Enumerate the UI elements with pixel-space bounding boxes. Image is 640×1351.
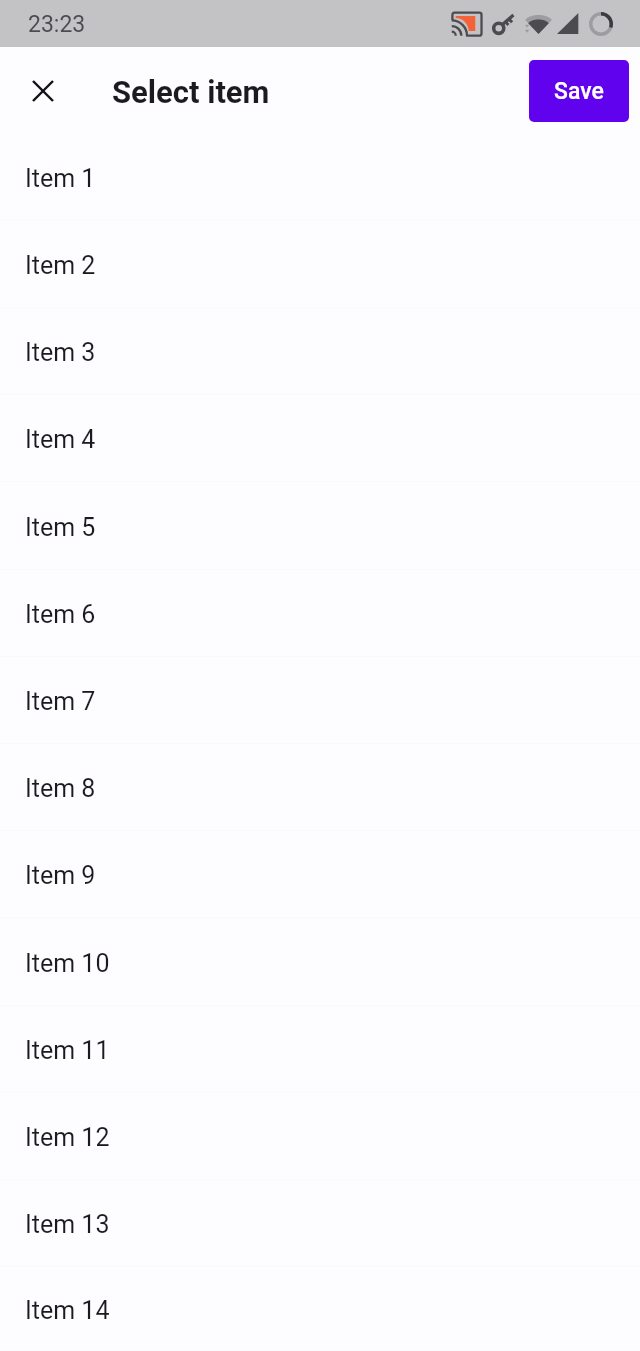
staticText: Item 8 <box>25 774 96 803</box>
button[interactable]: Item 11 <box>0 1006 640 1093</box>
staticText: Item 1 <box>25 164 96 193</box>
staticText: Save <box>554 78 604 105</box>
staticText: Item 12 <box>25 1123 110 1152</box>
button[interactable]: Save <box>529 60 629 122</box>
staticText: 23:23 <box>28 11 86 38</box>
staticText: Item 11 <box>25 1036 110 1065</box>
button[interactable]: Item 10 <box>0 918 640 1006</box>
button[interactable]: Item 2 <box>0 221 640 308</box>
button[interactable]: Close <box>19 67 67 115</box>
button[interactable]: Item 1 <box>0 134 640 221</box>
staticText: Item 10 <box>25 949 110 978</box>
button[interactable]: Item 7 <box>0 657 640 744</box>
button[interactable]: Item 5 <box>0 482 640 570</box>
button[interactable]: Item 3 <box>0 308 640 395</box>
button[interactable]: Item 14 <box>0 1267 640 1351</box>
button[interactable]: Item 12 <box>0 1093 640 1180</box>
staticText: Item 3 <box>25 338 96 367</box>
button[interactable]: Item 8 <box>0 744 640 831</box>
button[interactable]: Item 13 <box>0 1180 640 1267</box>
staticText: Item 14 <box>25 1296 110 1325</box>
staticText: Item 5 <box>25 513 96 542</box>
staticText: Select item <box>112 74 270 110</box>
button[interactable]: Item 6 <box>0 570 640 657</box>
staticText: Item 7 <box>25 687 96 716</box>
staticText: Item 13 <box>25 1210 110 1239</box>
button[interactable]: Item 9 <box>0 831 640 918</box>
staticText: Item 9 <box>25 861 96 890</box>
staticText: Item 6 <box>25 600 96 629</box>
staticText: Item 2 <box>25 251 96 280</box>
button[interactable]: Item 4 <box>0 395 640 482</box>
staticText: Item 4 <box>25 425 96 454</box>
